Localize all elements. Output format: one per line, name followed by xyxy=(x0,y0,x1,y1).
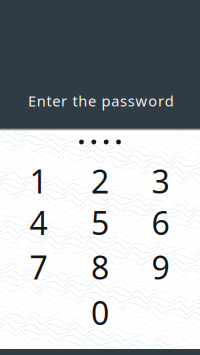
staticText: 0 xyxy=(91,291,109,334)
button[interactable]: 8 xyxy=(74,247,126,287)
button[interactable]: 7 xyxy=(12,247,64,287)
staticText: 7 xyxy=(29,246,47,288)
staticText: 9 xyxy=(151,246,169,288)
button[interactable]: 0 xyxy=(74,292,126,332)
staticText: 5 xyxy=(91,201,109,244)
button[interactable]: 1 xyxy=(12,161,64,201)
staticText: 3 xyxy=(151,160,169,202)
button[interactable]: 6 xyxy=(134,202,186,242)
staticText: 1 xyxy=(29,160,47,202)
button[interactable]: 4 xyxy=(12,202,64,242)
staticText: 6 xyxy=(151,201,169,244)
staticText: Enter the password xyxy=(28,91,174,110)
button[interactable]: 3 xyxy=(134,161,186,201)
button[interactable]: 9 xyxy=(134,247,186,287)
button[interactable]: 5 xyxy=(74,202,126,242)
staticText: 8 xyxy=(91,246,109,288)
staticText: 4 xyxy=(29,201,47,244)
button[interactable]: 2 xyxy=(74,161,126,201)
staticText: 2 xyxy=(91,160,109,202)
